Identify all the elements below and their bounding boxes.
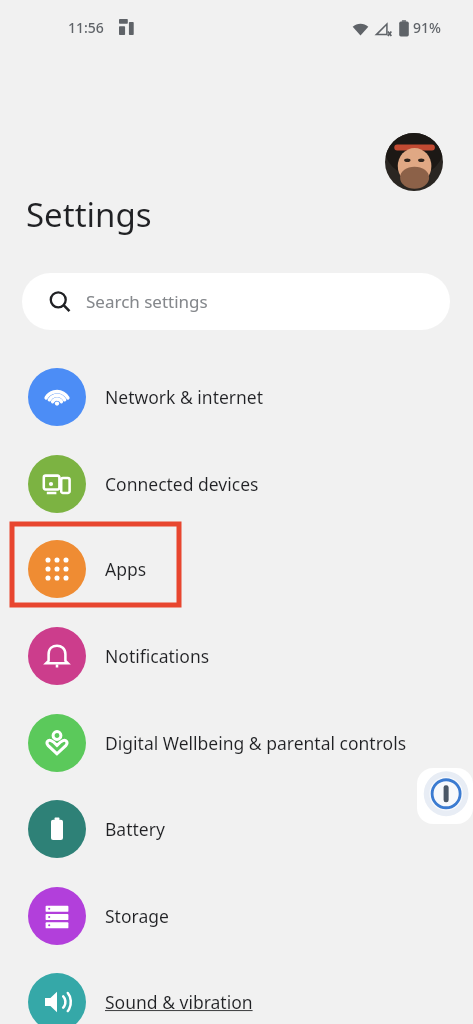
- staticText: Connected devices: [105, 472, 259, 496]
- staticText: 91%: [413, 18, 441, 37]
- button[interactable]: Notifications: [0, 627, 473, 685]
- staticText: Digital Wellbeing & parental controls: [105, 731, 407, 755]
- staticText: Battery: [105, 817, 165, 841]
- button[interactable]: Storage: [0, 887, 473, 945]
- staticText: Search settings: [86, 290, 208, 313]
- button[interactable]: Battery: [0, 800, 473, 858]
- staticText: Storage: [105, 904, 169, 928]
- staticText: Settings: [26, 192, 152, 237]
- button[interactable]: Connected devices: [0, 455, 473, 513]
- staticText: Sound & vibration: [105, 990, 253, 1014]
- button[interactable]: Digital Wellbeing & parental controls: [0, 714, 473, 772]
- button[interactable]: Password manager: [417, 768, 473, 824]
- staticText: 11:56: [68, 18, 104, 37]
- button[interactable]: Account: [385, 133, 443, 191]
- button[interactable]: Sound & vibration: [0, 973, 473, 1024]
- button[interactable]: Apps: [0, 540, 473, 598]
- staticText: Network & internet: [105, 385, 264, 409]
- button[interactable]: Search settings: [22, 273, 450, 330]
- button[interactable]: Network & internet: [0, 368, 473, 426]
- staticText: Notifications: [105, 644, 210, 668]
- staticText: Apps: [105, 557, 147, 581]
